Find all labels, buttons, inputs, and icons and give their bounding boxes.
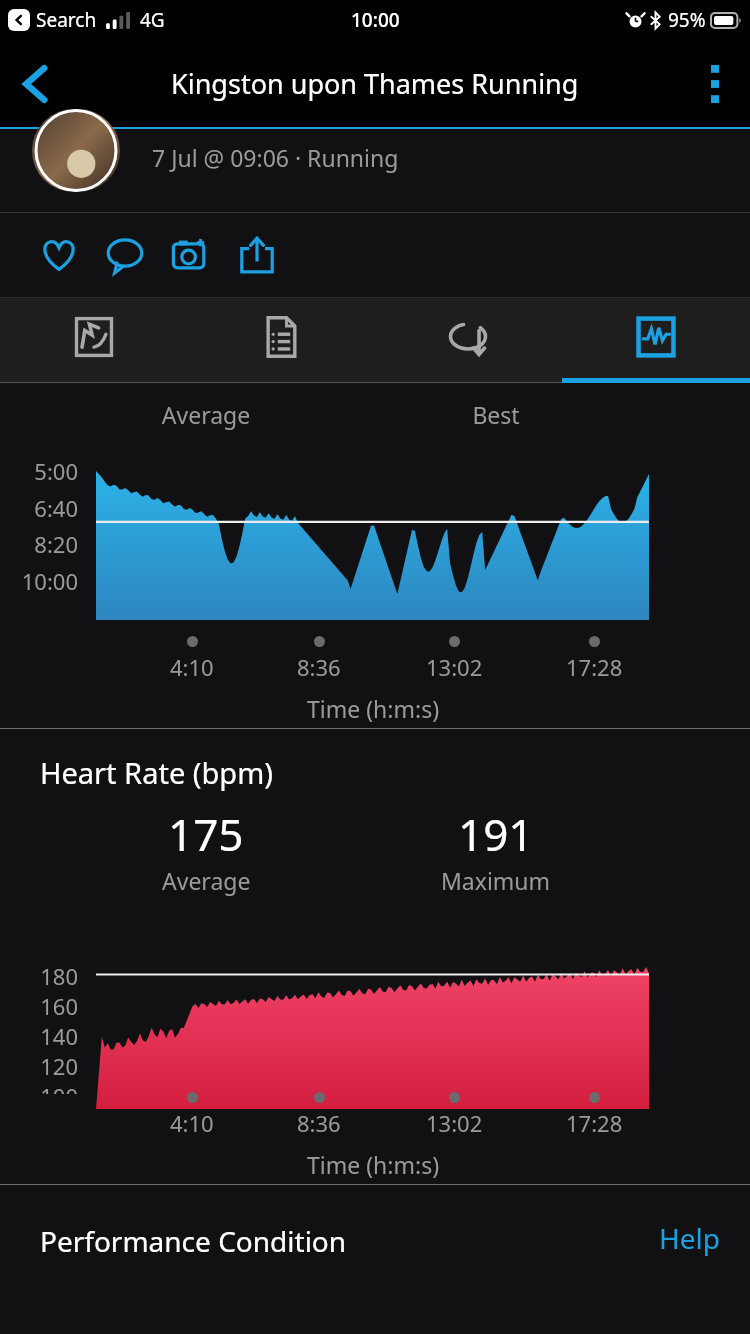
button[interactable]: Like bbox=[26, 222, 92, 288]
button[interactable]: Map bbox=[0, 298, 187, 383]
button[interactable]: Charts bbox=[562, 298, 750, 383]
staticText: 10:00 bbox=[351, 7, 400, 33]
staticText: 4:10 bbox=[170, 652, 214, 682]
staticText: 95% bbox=[668, 7, 706, 33]
button[interactable]: Details bbox=[187, 298, 374, 383]
button[interactable]: Share bbox=[224, 222, 290, 288]
staticText: Time (h:m:s) bbox=[307, 693, 440, 724]
staticText: 5:00 bbox=[8, 456, 78, 486]
staticText: 4:10 bbox=[170, 1108, 214, 1138]
staticText: 120 bbox=[8, 1051, 78, 1081]
staticText: 191 bbox=[458, 804, 534, 864]
button[interactable]: More options bbox=[680, 40, 750, 127]
staticText: 8:20 bbox=[8, 529, 78, 559]
staticText: 140 bbox=[8, 1021, 78, 1051]
staticText: Help bbox=[659, 1219, 720, 1257]
staticText: Average bbox=[162, 865, 251, 896]
staticText: 4G bbox=[140, 7, 165, 33]
staticText: 175 bbox=[168, 804, 244, 864]
staticText: 8:36 bbox=[297, 652, 341, 682]
staticText: 100 bbox=[8, 1081, 78, 1094]
button[interactable]: Laps bbox=[374, 298, 562, 383]
staticText: 180 bbox=[8, 961, 78, 991]
staticText: Time (h:m:s) bbox=[307, 1149, 440, 1180]
button[interactable]: Comment bbox=[92, 222, 158, 288]
button[interactable]: Performance Condition bbox=[0, 1185, 750, 1334]
button[interactable]: Help bbox=[655, 1211, 724, 1265]
staticText: 7 Jul @ 09:06 · Running bbox=[152, 142, 399, 173]
button[interactable] bbox=[32, 109, 120, 192]
staticText: 160 bbox=[8, 991, 78, 1021]
button[interactable]: Back bbox=[0, 40, 70, 127]
staticText: Best bbox=[436, 399, 556, 430]
staticText: 10:00 bbox=[8, 566, 78, 596]
staticText: Kingston upon Thames Running bbox=[171, 65, 579, 102]
staticText: Heart Rate (bpm) bbox=[40, 753, 273, 792]
staticText: Performance Condition bbox=[40, 1222, 347, 1260]
staticText: 13:02 bbox=[426, 652, 483, 682]
staticText: 8:36 bbox=[297, 1108, 341, 1138]
staticText: 17:28 bbox=[566, 1108, 623, 1138]
staticText: Search bbox=[36, 7, 97, 33]
staticText: Maximum bbox=[441, 865, 551, 896]
staticText: 13:02 bbox=[426, 1108, 483, 1138]
staticText: 6:40 bbox=[8, 493, 78, 523]
button[interactable]: Add photo bbox=[158, 222, 224, 288]
staticText: Average bbox=[96, 399, 316, 430]
staticText: 17:28 bbox=[566, 652, 623, 682]
